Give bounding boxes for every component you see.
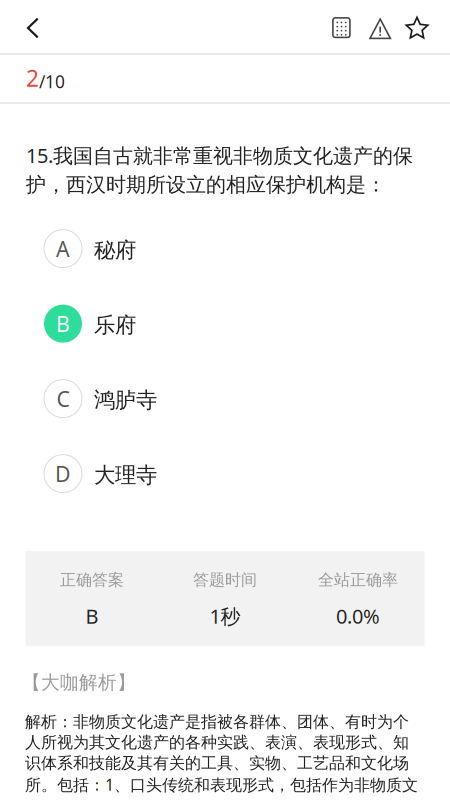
staticText: B bbox=[85, 603, 98, 629]
staticText: 1秒 bbox=[209, 603, 240, 629]
staticText: D bbox=[55, 459, 71, 488]
button[interactable]: Add to favourites bbox=[398, 0, 439, 53]
staticText: 乐府 bbox=[94, 312, 136, 338]
staticText: A bbox=[56, 234, 70, 263]
staticText: 答题时间 bbox=[193, 570, 257, 590]
staticText: /10 bbox=[39, 70, 65, 93]
staticText: 解析：非物质文化遗产是指被各群体、团体、有时为个人所视为其文化遗产的各种实践、表… bbox=[25, 712, 418, 795]
staticText: 正确答案 bbox=[60, 570, 124, 590]
staticText: B bbox=[56, 309, 70, 338]
button[interactable]: Back bbox=[0, 0, 56, 53]
button[interactable]: B bbox=[0, 286, 450, 361]
staticText: 全站正确率 bbox=[318, 570, 398, 590]
staticText: 15.我国自古就非常重视非物质文化遗产的保护，西汉时期所设立的相应保护机构是： bbox=[26, 142, 413, 197]
staticText: C bbox=[56, 384, 69, 413]
staticText: 2 bbox=[26, 63, 39, 93]
staticText: 0.0% bbox=[336, 603, 380, 629]
staticText: 【大咖解析】 bbox=[22, 671, 136, 694]
button[interactable]: A bbox=[0, 211, 450, 286]
button[interactable]: Question list bbox=[322, 0, 360, 53]
staticText: 大理寺 bbox=[94, 462, 157, 488]
staticText: 秘府 bbox=[94, 237, 136, 263]
button[interactable]: D bbox=[0, 436, 450, 511]
button[interactable]: C bbox=[0, 361, 450, 436]
button[interactable]: Report error bbox=[360, 0, 398, 53]
staticText: 鸿胪寺 bbox=[94, 387, 157, 413]
